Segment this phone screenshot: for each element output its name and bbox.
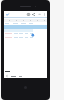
button[interactable]: Undo xyxy=(37,12,41,16)
button[interactable]: Sheet1 xyxy=(10,74,16,78)
button[interactable]: Previous sheet xyxy=(5,74,9,78)
button[interactable]: Share xyxy=(31,12,35,16)
button[interactable]: Done xyxy=(5,12,10,17)
button[interactable]: More options xyxy=(42,12,46,16)
other: Selection handle xyxy=(31,33,35,37)
button[interactable]: Add sheet xyxy=(18,74,22,78)
button[interactable]: Comments xyxy=(26,12,30,16)
